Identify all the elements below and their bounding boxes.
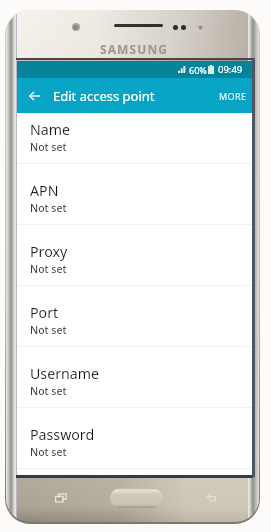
button[interactable]: Password — [17, 408, 252, 469]
staticText: Port — [30, 303, 59, 322]
staticText: Name — [30, 120, 71, 139]
staticText: 09:49 — [218, 63, 243, 76]
button[interactable]: Back — [204, 492, 216, 504]
staticText: Username — [30, 364, 100, 383]
staticText: Password — [30, 425, 95, 444]
staticText: Not set — [30, 262, 67, 276]
button[interactable]: Home — [110, 488, 163, 508]
staticText: Not set — [30, 201, 67, 215]
staticText: Not set — [30, 384, 67, 398]
button[interactable]: Navigate up — [23, 85, 45, 107]
button[interactable]: Recents — [55, 492, 67, 504]
staticText: APN — [30, 181, 59, 200]
staticText: Not set — [30, 140, 67, 154]
staticText: MORE — [219, 90, 247, 102]
staticText: 60% — [189, 64, 207, 76]
staticText: Not set — [30, 445, 67, 459]
staticText: SAMSUNG — [100, 41, 169, 57]
staticText: Proxy — [30, 242, 68, 261]
button[interactable]: MORE — [214, 82, 252, 110]
button[interactable]: Name — [17, 113, 252, 164]
button[interactable]: Username — [17, 347, 252, 408]
button[interactable]: APN — [17, 164, 252, 225]
staticText: Not set — [30, 323, 67, 337]
button[interactable]: Port — [17, 286, 252, 347]
button[interactable]: Proxy — [17, 225, 252, 286]
staticText: Edit access point — [53, 87, 155, 105]
